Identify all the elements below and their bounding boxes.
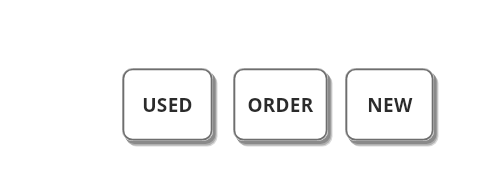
staticText: ORDER <box>247 92 314 118</box>
staticText: NEW <box>367 92 413 118</box>
button[interactable]: NEW <box>345 68 442 149</box>
button[interactable]: ORDER <box>233 68 336 149</box>
button[interactable]: USED <box>122 68 221 149</box>
staticText: USED <box>142 92 193 118</box>
